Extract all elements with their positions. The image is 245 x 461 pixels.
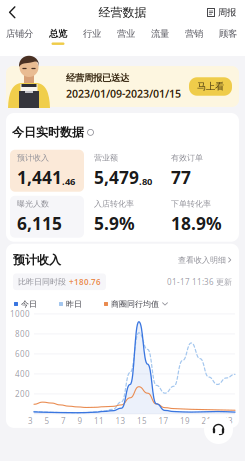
staticText: 17 (158, 416, 168, 426)
staticText: +180.76 (69, 276, 101, 287)
button[interactable]: 总览 (49, 28, 67, 45)
button[interactable]: 周报 (201, 3, 242, 22)
staticText: 今日实时数据 (12, 125, 84, 140)
button[interactable]: 在线客服 (204, 415, 233, 444)
staticText: 营销 (185, 28, 203, 39)
staticText: 23 (223, 416, 233, 426)
staticText: 营业额 (94, 153, 118, 163)
staticText: 经营周报已送达 (66, 72, 129, 84)
button[interactable]: 查看收入明细 (178, 255, 232, 265)
staticText: 下单转化率 (171, 199, 211, 209)
staticText: 800 (15, 329, 30, 339)
staticText: 600 (15, 349, 30, 359)
staticText: 预计收入 (13, 253, 61, 267)
staticText: 查看收入明细 (178, 255, 226, 265)
staticText: 11 (94, 416, 104, 426)
staticText: 01-17 11:36 更新 (167, 276, 232, 287)
button[interactable]: 营销 (185, 28, 203, 45)
staticText: 2023/01/09-2023/01/15 (66, 87, 181, 101)
staticText: 马上看 (197, 81, 224, 92)
staticText: 200 (15, 389, 30, 399)
staticText: 经营数据 (98, 5, 146, 20)
staticText: 昨日 (66, 299, 82, 309)
staticText: 商圈同行均值 (111, 299, 159, 309)
staticText: 9 (77, 416, 82, 426)
button[interactable]: 营业 (117, 28, 135, 45)
staticText: 今日 (21, 299, 37, 309)
button[interactable]: 顾客 (219, 28, 237, 45)
staticText: 5 (44, 416, 49, 426)
staticText: 15 (137, 416, 147, 426)
staticText: 入店转化率 (94, 199, 134, 209)
staticText: 1000 (10, 309, 30, 319)
staticText: 6,115 (17, 212, 62, 235)
staticText: 5.9% (94, 212, 135, 235)
staticText: 总览 (49, 28, 67, 39)
staticText: 19 (180, 416, 190, 426)
staticText: 1,441 (17, 166, 62, 189)
staticText: 5,479 (94, 166, 139, 189)
staticText: 18.9% (171, 212, 222, 235)
staticText: 400 (15, 369, 30, 379)
staticText: 3 (28, 416, 33, 426)
button[interactable]: 经营周报已送达 (6, 66, 239, 107)
staticText: 营业 (117, 28, 135, 39)
staticText: 顾客 (219, 28, 237, 39)
button[interactable]: 返回 (3, 1, 22, 23)
staticText: 周报 (218, 7, 236, 18)
staticText: 7 (61, 416, 66, 426)
staticText: 21 (201, 416, 211, 426)
button[interactable]: 行业 (83, 28, 101, 45)
button[interactable]: 流量 (151, 28, 169, 45)
staticText: 比昨日同时段 (18, 277, 66, 287)
staticText: 预计收入 (17, 153, 49, 163)
staticText: 13 (115, 416, 125, 426)
staticText: 77 (171, 166, 191, 189)
staticText: 流量 (151, 28, 169, 39)
staticText: 行业 (83, 28, 101, 39)
staticText: 有效订单 (171, 153, 203, 163)
staticText: 曝光人数 (17, 199, 49, 209)
staticText: .46 (62, 175, 75, 188)
staticText: .80 (139, 175, 152, 188)
button[interactable]: 店铺分 (6, 28, 33, 45)
staticText: 店铺分 (6, 28, 33, 39)
